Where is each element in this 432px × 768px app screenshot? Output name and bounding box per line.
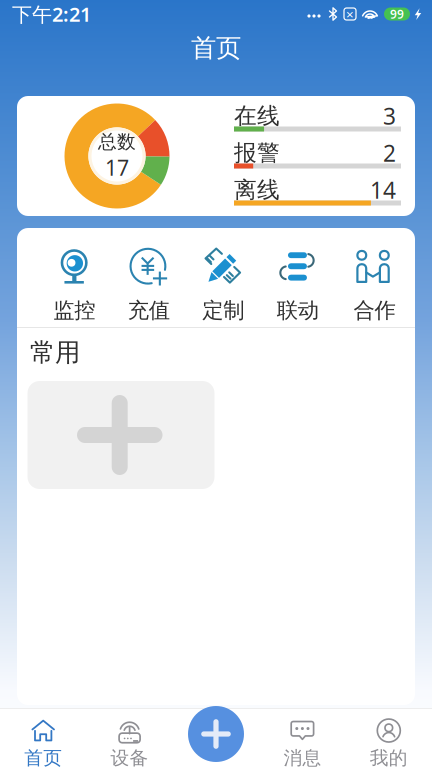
staticText: 联动 <box>277 297 319 324</box>
staticText: 报警 <box>234 139 280 167</box>
button[interactable]: Add <box>188 706 244 762</box>
staticText: 2 <box>383 138 396 168</box>
staticText: 监控 <box>53 297 95 324</box>
staticText: 下午2:21 <box>12 1 91 27</box>
staticText: 首页 <box>24 746 62 768</box>
staticText: 在线 <box>234 102 280 130</box>
staticText: 充值 <box>128 297 170 324</box>
staticText: 合作 <box>353 297 395 324</box>
staticText: 消息 <box>283 746 321 768</box>
staticText: × <box>346 5 354 23</box>
staticText: 设备 <box>111 746 149 768</box>
button[interactable]: 设备 <box>86 709 173 768</box>
staticText: 离线 <box>234 176 280 204</box>
staticText: 总数 <box>98 130 136 153</box>
button[interactable]: 我的 <box>346 709 432 768</box>
staticText: 14 <box>370 175 396 205</box>
staticText: 常用 <box>30 337 80 368</box>
button[interactable]: 消息 <box>259 709 346 768</box>
staticText: 3 <box>383 101 396 131</box>
staticText: 17 <box>105 153 129 182</box>
staticText: 定制 <box>202 297 244 324</box>
staticText: 99 <box>390 6 404 22</box>
staticText: 我的 <box>370 746 408 768</box>
button[interactable]: 定制 <box>186 231 260 323</box>
button[interactable]: 合作 <box>335 231 414 323</box>
button[interactable]: 监控 <box>37 231 111 323</box>
button[interactable]: 联动 <box>260 231 335 323</box>
button[interactable]: 充值 <box>111 231 186 323</box>
staticText: 首页 <box>191 32 241 63</box>
button[interactable] <box>27 381 214 489</box>
button[interactable]: 首页 <box>0 709 86 768</box>
